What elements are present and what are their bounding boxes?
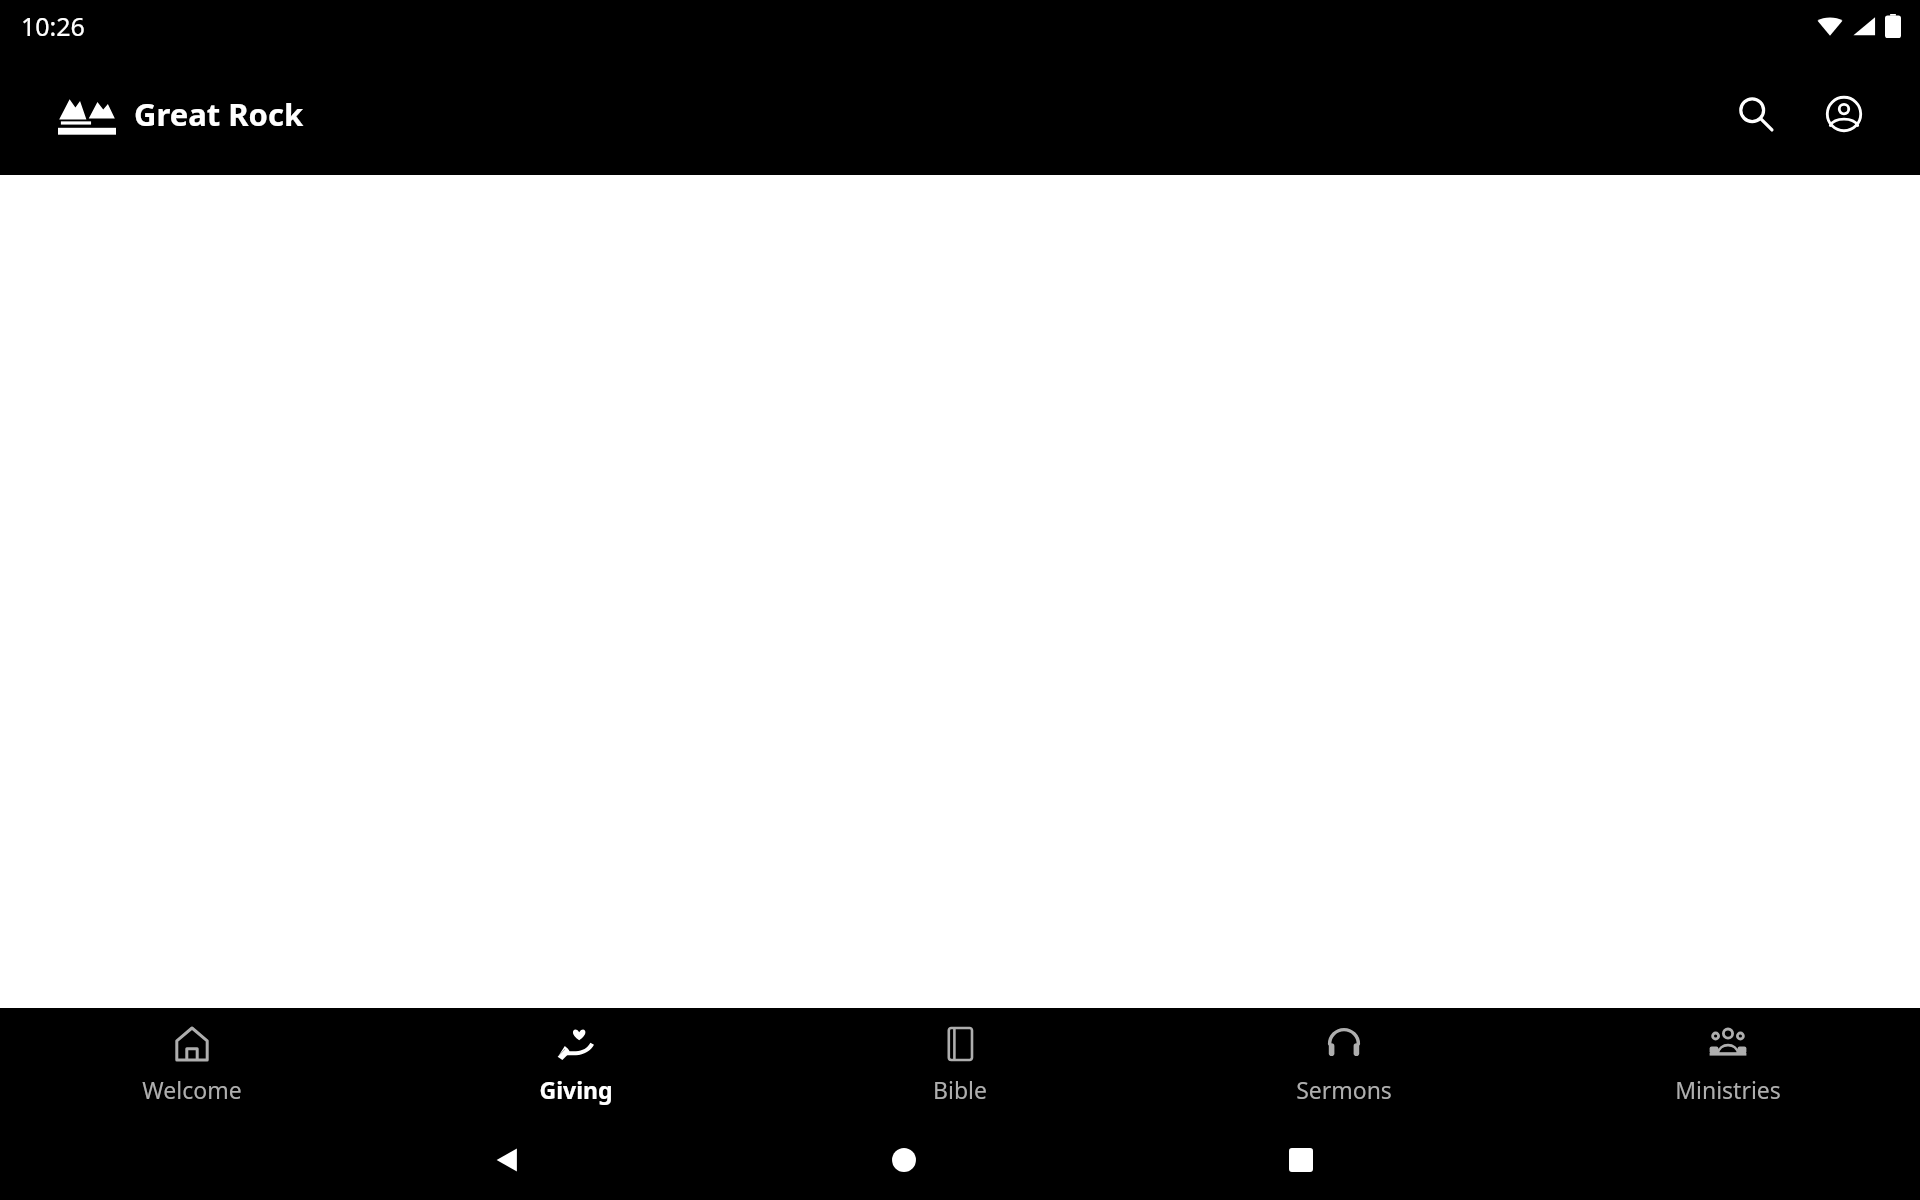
staticText: Bible — [933, 1074, 987, 1105]
button[interactable]: Welcome — [0, 1008, 384, 1120]
button[interactable]: Ministries — [1536, 1008, 1920, 1120]
staticText: 10:26 — [21, 9, 85, 43]
button[interactable]: Back — [447, 1120, 567, 1200]
button[interactable]: Account — [1806, 76, 1882, 152]
staticText: Great Rock — [134, 93, 304, 135]
button[interactable]: Giving — [384, 1008, 768, 1120]
button[interactable]: Home — [844, 1120, 964, 1200]
button[interactable]: Bible — [768, 1008, 1152, 1120]
button[interactable]: Sermons — [1152, 1008, 1536, 1120]
button[interactable]: Recent apps — [1241, 1120, 1361, 1200]
staticText: Welcome — [142, 1074, 242, 1105]
staticText: Giving — [539, 1074, 613, 1105]
button[interactable]: Search — [1718, 76, 1794, 152]
staticText: Ministries — [1675, 1074, 1781, 1105]
staticText: Sermons — [1296, 1074, 1392, 1105]
